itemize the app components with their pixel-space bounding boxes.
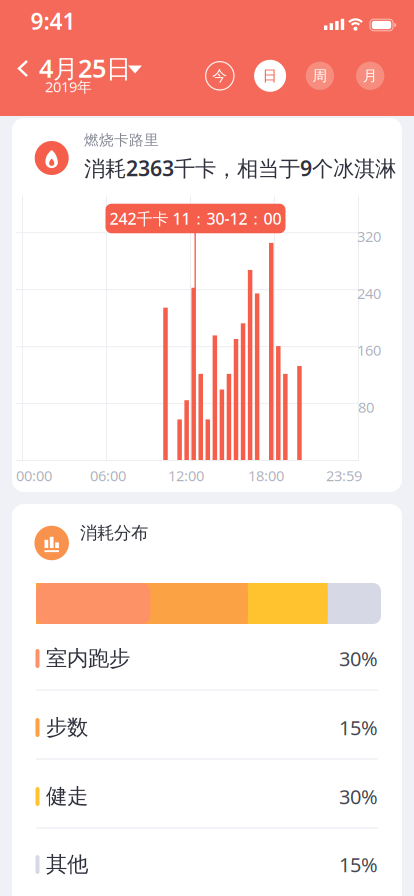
staticText: 9:41: [30, 6, 75, 36]
staticText: 消耗分布: [80, 522, 148, 544]
staticText: 12:00: [168, 466, 204, 485]
staticText: 30%: [339, 783, 378, 810]
button[interactable]: 4月25日: [0, 45, 160, 105]
staticText: 消耗2363千卡，相当于9个冰淇淋: [84, 154, 396, 182]
button[interactable]: 月: [352, 58, 388, 94]
staticText: 室内跑步: [46, 645, 130, 672]
staticText: 2019年: [45, 77, 92, 96]
staticText: 242千卡 11：30-12：00: [109, 208, 281, 229]
staticText: 30%: [339, 645, 378, 672]
button[interactable]: 周: [302, 58, 338, 94]
staticText: 06:00: [90, 466, 126, 485]
staticText: 15%: [339, 714, 378, 741]
staticText: 月: [363, 67, 378, 85]
staticText: 健走: [46, 783, 88, 810]
staticText: 日: [263, 67, 278, 85]
staticText: 160: [357, 340, 381, 360]
staticText: 周: [312, 67, 327, 85]
staticText: 4月25日: [39, 51, 131, 85]
staticText: 燃烧卡路里: [84, 131, 159, 149]
staticText: 80: [358, 397, 374, 417]
staticText: 320: [357, 226, 381, 246]
button[interactable]: 今: [202, 58, 238, 94]
staticText: 步数: [46, 714, 88, 741]
staticText: 今: [212, 67, 227, 85]
staticText: 23:59: [326, 466, 362, 485]
staticText: 00:00: [16, 466, 52, 485]
button[interactable]: 日: [252, 58, 288, 94]
staticText: 240: [357, 283, 381, 303]
staticText: 其他: [46, 851, 88, 878]
staticText: 18:00: [248, 466, 284, 485]
staticText: 15%: [339, 851, 378, 878]
